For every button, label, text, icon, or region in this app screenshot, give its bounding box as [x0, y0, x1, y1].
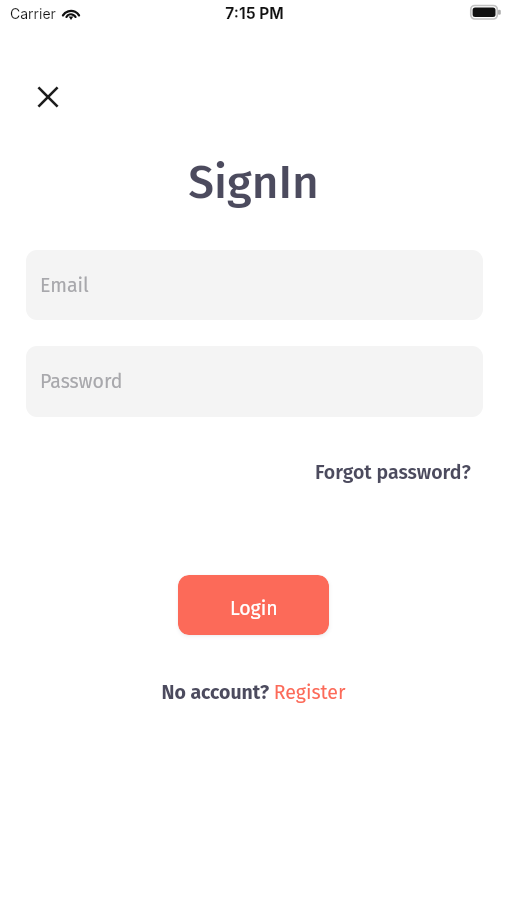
staticText: Password — [40, 370, 123, 393]
button[interactable]: Email — [26, 250, 483, 320]
button[interactable]: Login — [178, 575, 329, 635]
staticText: 7:15 PM — [1, 4, 507, 23]
button[interactable]: Forgot password? — [308, 455, 478, 490]
button[interactable]: Close — [26, 75, 70, 119]
staticText: SignIn — [0, 155, 507, 210]
staticText: Forgot password? — [315, 461, 471, 484]
button[interactable]: Password — [26, 346, 483, 417]
staticText: Login — [230, 597, 278, 620]
staticText: Carrier — [10, 5, 56, 22]
button[interactable]: No account? Register — [155, 675, 352, 710]
staticText: Email — [40, 274, 89, 297]
staticText: No account? Register — [161, 681, 346, 704]
